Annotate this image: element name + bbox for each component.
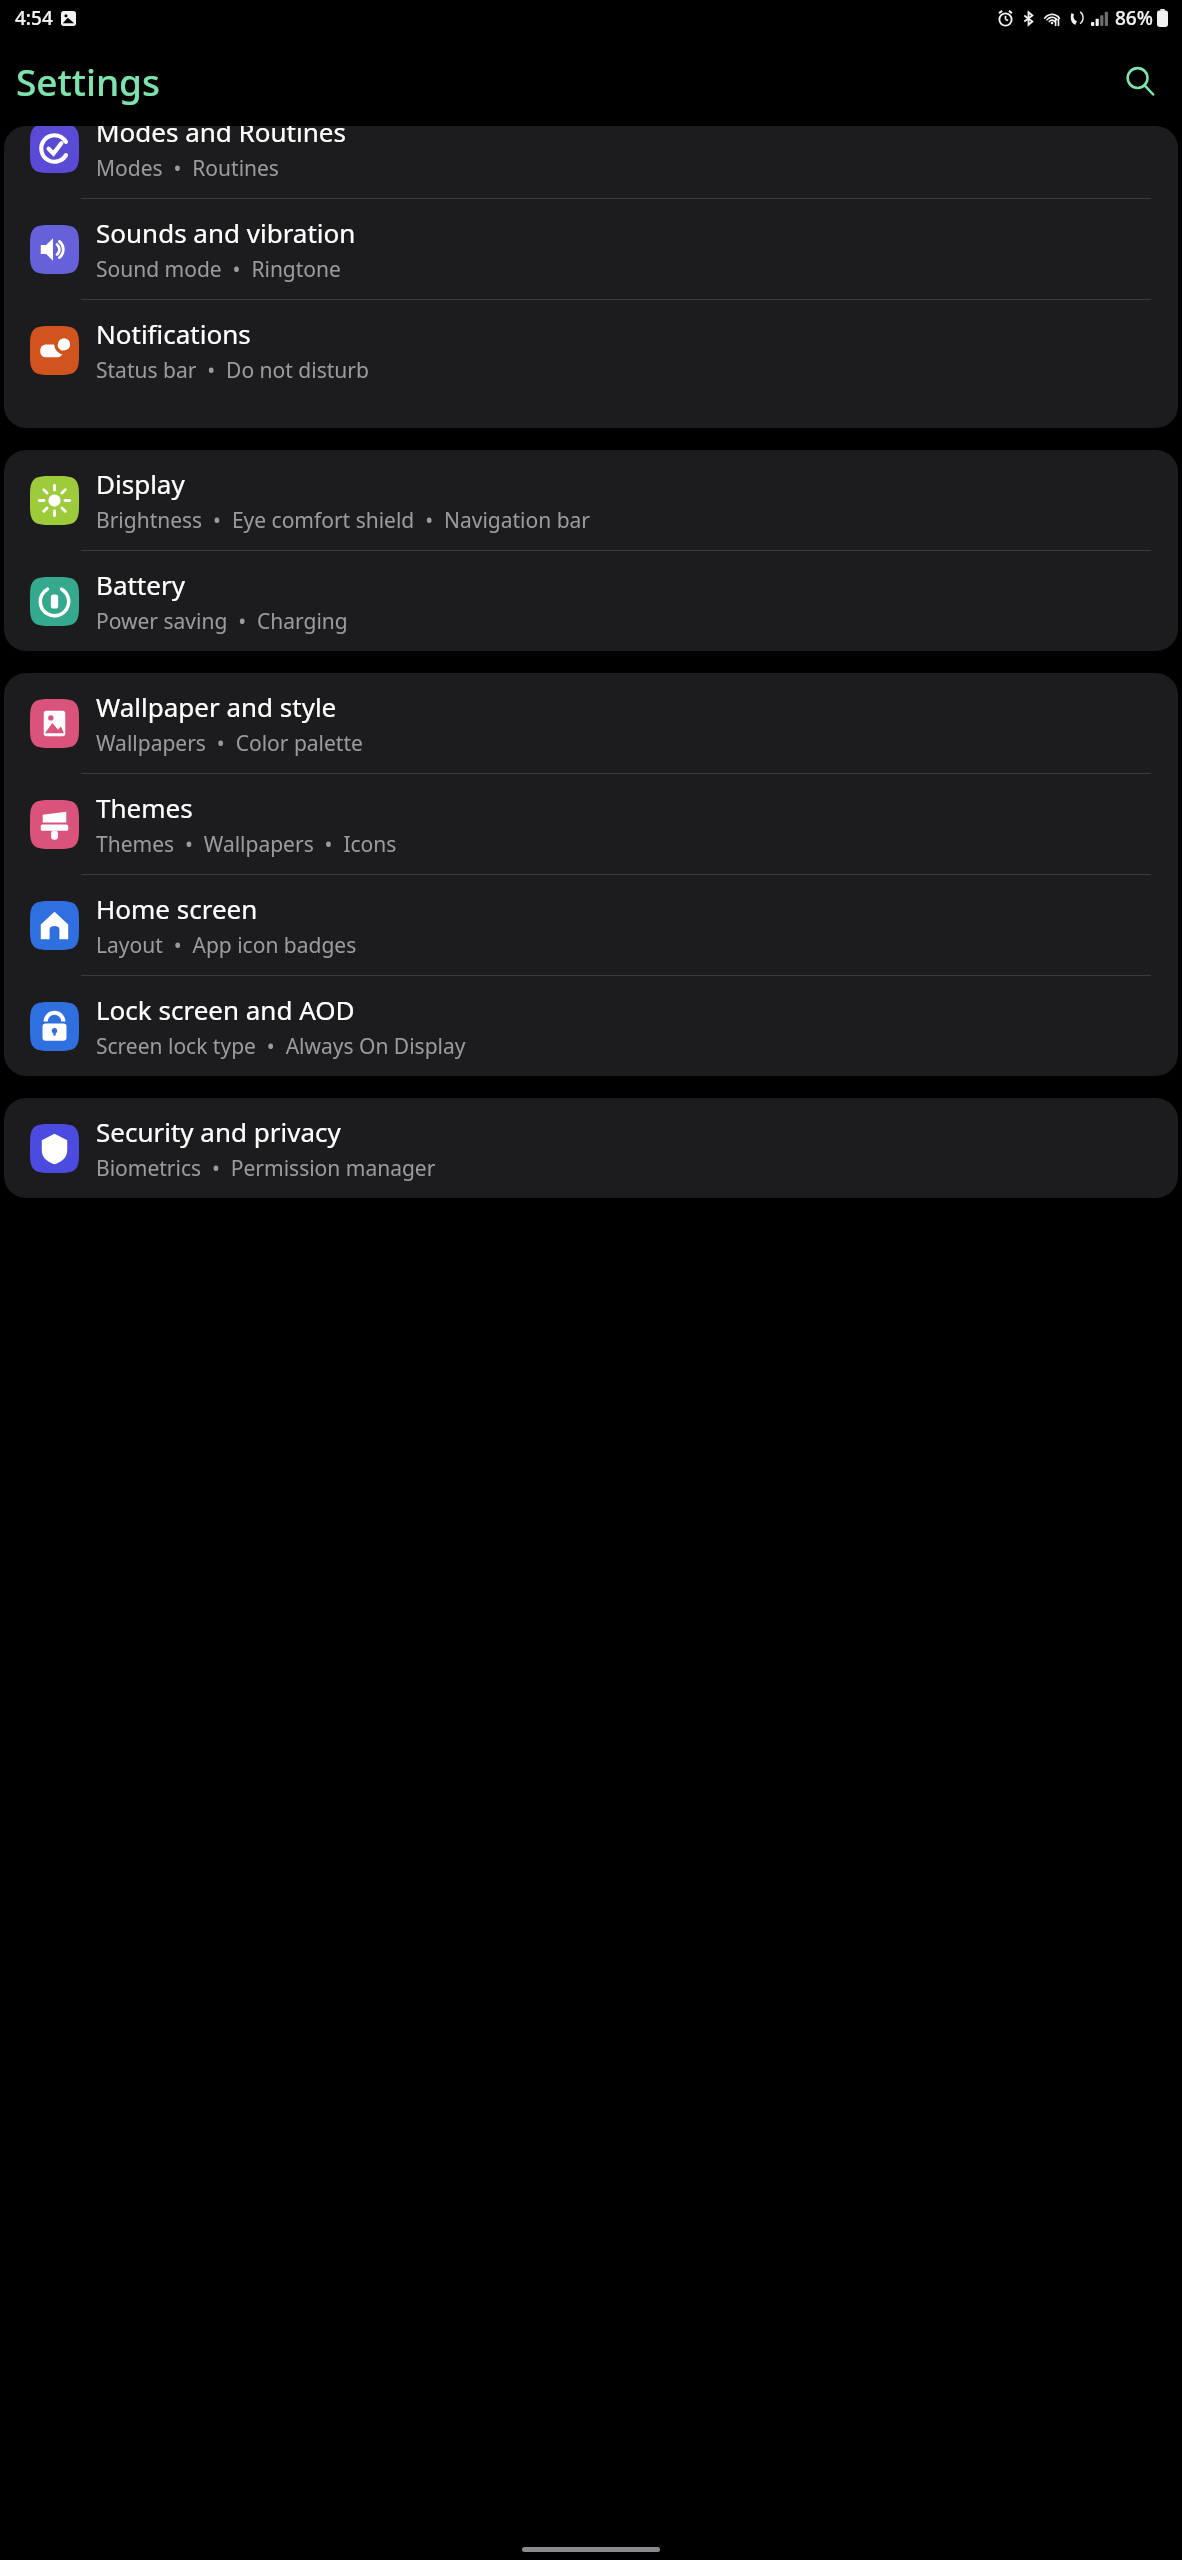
button[interactable]: Battery [4,551,1178,651]
button[interactable]: Modes and Routines [4,126,1178,199]
staticText: 86% [1115,5,1153,31]
staticText: Status bar • Do not disturb [96,356,369,385]
button[interactable]: Security and privacy [4,1098,1178,1198]
staticText: Security and privacy [96,1114,341,1149]
button[interactable]: Themes [4,774,1178,875]
staticText: Battery [96,567,185,602]
staticText: 4:54 [15,5,53,31]
staticText: Themes [96,790,193,825]
staticText: Brightness • Eye comfort shield • Naviga… [96,506,591,535]
button[interactable]: Lock screen and AOD [4,976,1178,1076]
staticText: Layout • App icon badges [96,931,357,960]
staticText: Biometrics • Permission manager [96,1154,436,1183]
staticText: Modes and Routines [96,126,346,149]
staticText: Notifications [96,316,251,351]
staticText: Home screen [96,891,258,926]
button[interactable]: Sounds and vibration [4,199,1178,300]
button[interactable]: Search [1114,55,1166,107]
button[interactable]: Home screen [4,875,1178,976]
staticText: Settings [16,56,161,106]
staticText: Sounds and vibration [96,215,356,250]
staticText: Themes • Wallpapers • Icons [96,830,397,859]
staticText: Screen lock type • Always On Display [96,1032,466,1061]
button[interactable]: Display [4,450,1178,551]
staticText: Display [96,466,185,501]
staticText: Power saving • Charging [96,607,348,636]
staticText: Sound mode • Ringtone [96,255,341,284]
button[interactable]: Notifications [4,300,1178,400]
staticText: Lock screen and AOD [96,992,355,1027]
button[interactable]: Wallpaper and style [4,673,1178,774]
staticText: Wallpaper and style [96,689,337,724]
staticText: Wallpapers • Color palette [96,729,363,758]
staticText: Modes • Routines [96,154,279,183]
